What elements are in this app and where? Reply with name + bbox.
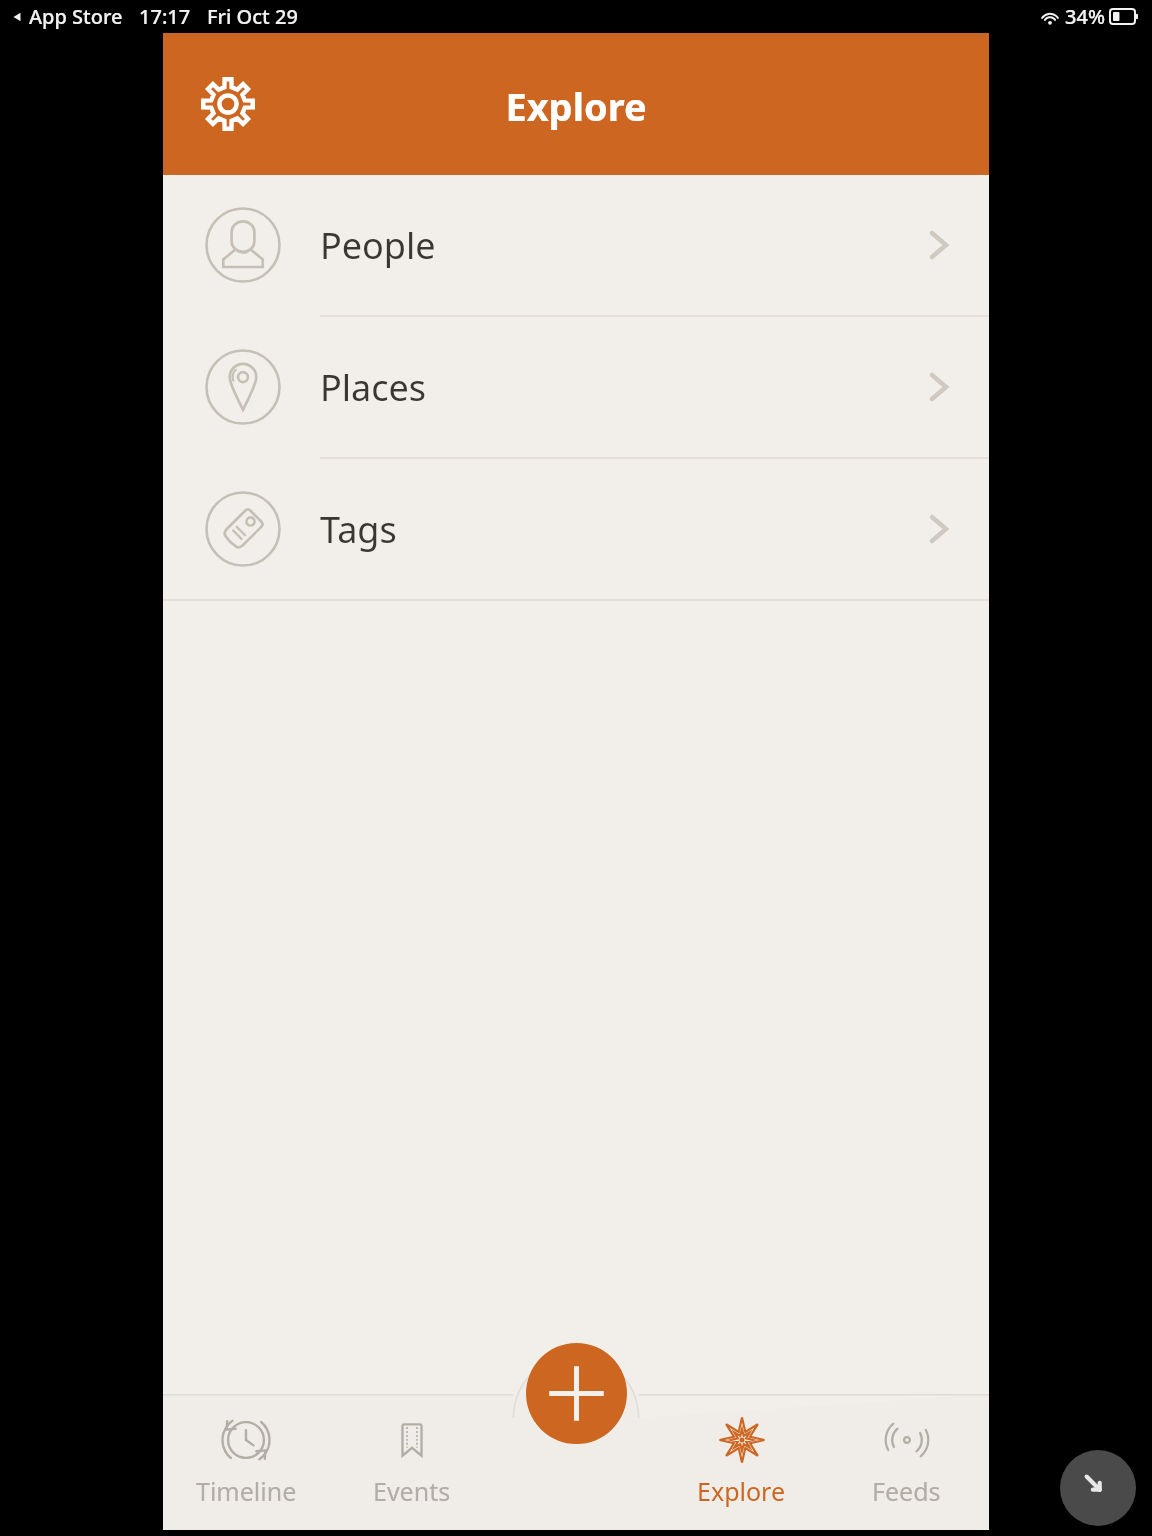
staticText: Feeds [872,1474,941,1508]
staticText: Timeline [196,1474,297,1508]
staticText: Tags [320,505,914,554]
button[interactable]: People [163,175,989,315]
button[interactable]: Places [163,317,989,457]
button[interactable]: Explore [659,1394,824,1530]
button[interactable]: Add [526,1343,627,1444]
staticText: App Store [29,3,123,30]
button[interactable]: Tags [163,459,989,599]
button[interactable]: Minimize [1060,1450,1136,1526]
staticText: Fri Oct 29 [207,3,298,30]
button[interactable]: Events [329,1394,494,1530]
staticText: 34% [1065,3,1105,30]
button[interactable]: Settings [195,71,261,137]
staticText: People [320,221,914,270]
button[interactable]: Timeline [163,1394,329,1530]
button[interactable]: Feeds [824,1394,989,1530]
staticText: Places [320,363,914,412]
staticText: Explore [505,80,647,132]
staticText: Explore [697,1474,786,1508]
staticText: 17:17 [139,3,191,30]
staticText: Events [373,1474,451,1508]
